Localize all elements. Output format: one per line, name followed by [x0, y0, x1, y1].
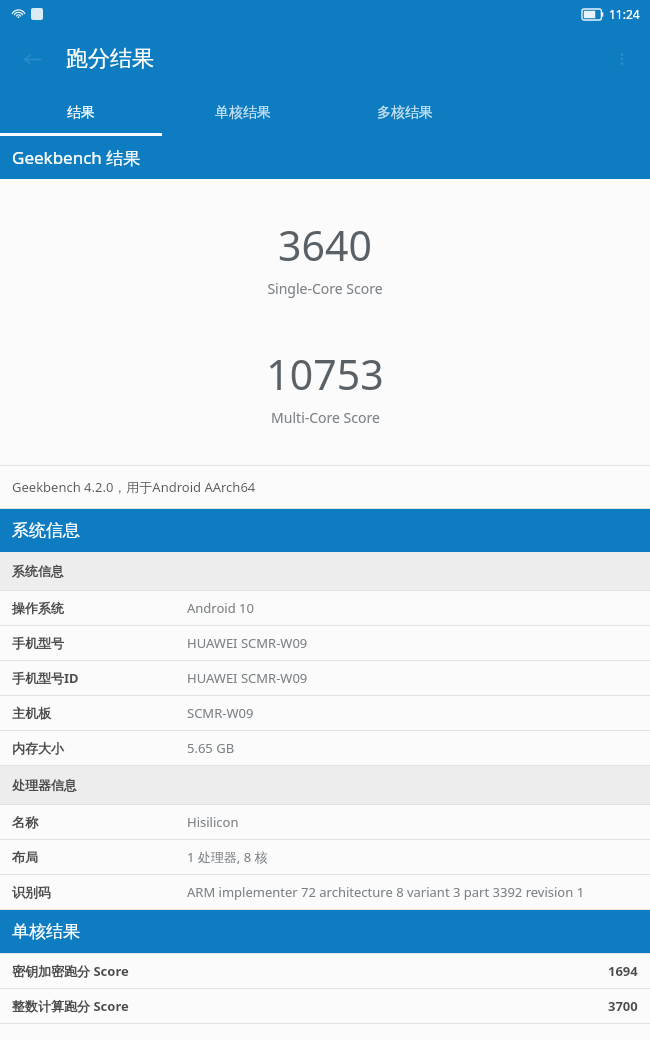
staticText: 手机型号ID	[12, 669, 187, 687]
staticText: 密钥加密跑分 Score	[12, 962, 129, 980]
staticText: Hisilicon	[187, 813, 239, 831]
staticText: Single-Core Score	[267, 279, 383, 298]
button[interactable]: 布局	[0, 840, 650, 874]
staticText: 主机板	[12, 705, 187, 721]
button[interactable]: 密钥加密跑分 Score	[0, 954, 650, 988]
staticText: 11:24	[609, 6, 640, 22]
button[interactable]: 整数计算跑分 Score	[0, 989, 650, 1023]
staticText: 布局	[12, 849, 187, 865]
staticText: 结果	[67, 104, 95, 122]
staticText: Android 10	[187, 599, 254, 617]
button[interactable]: 手机型号	[0, 626, 650, 660]
button[interactable]: 名称	[0, 805, 650, 839]
staticText: 3700	[608, 997, 638, 1015]
button[interactable]: 结果	[0, 90, 162, 136]
button[interactable]: 操作系统	[0, 591, 650, 625]
button[interactable]: 内存大小	[0, 731, 650, 765]
staticText: 名称	[12, 814, 187, 830]
staticText: HUAWEI SCMR-W09	[187, 634, 308, 652]
staticText: 1 处理器, 8 核	[187, 848, 268, 866]
staticText: 单核结果	[215, 104, 271, 122]
button[interactable]: 单核结果	[162, 90, 324, 136]
button[interactable]: 多核结果	[324, 90, 486, 136]
staticText: 1694	[608, 962, 638, 980]
staticText: 操作系统	[12, 600, 187, 616]
staticText: 3640	[278, 217, 372, 273]
staticText: 手机型号	[12, 635, 187, 651]
staticText: 处理器信息	[12, 777, 77, 793]
button[interactable]: 识别码	[0, 875, 650, 909]
staticText: 整数计算跑分 Score	[12, 997, 129, 1015]
button[interactable]: 手机型号ID	[0, 661, 650, 695]
staticText: 识别码	[12, 884, 187, 900]
staticText: 系统信息	[12, 563, 64, 579]
staticText: Geekbench 结果	[12, 146, 141, 169]
staticText: 单核结果	[12, 921, 80, 942]
button[interactable]: 主机板	[0, 696, 650, 730]
staticText: 10753	[266, 346, 384, 402]
staticText: 5.65 GB	[187, 739, 235, 757]
staticText: 多核结果	[377, 104, 433, 122]
staticText: ARM implementer 72 architecture 8 varian…	[187, 883, 585, 901]
staticText: 跑分结果	[66, 45, 154, 73]
staticText: HUAWEI SCMR-W09	[187, 669, 308, 687]
staticText: Geekbench 4.2.0，用于Android AArch64	[12, 478, 256, 496]
staticText: Multi-Core Score	[271, 408, 380, 427]
staticText: 内存大小	[12, 740, 187, 756]
button[interactable]: Back	[10, 37, 54, 81]
staticText: 系统信息	[12, 520, 80, 541]
staticText: SCMR-W09	[187, 704, 254, 722]
